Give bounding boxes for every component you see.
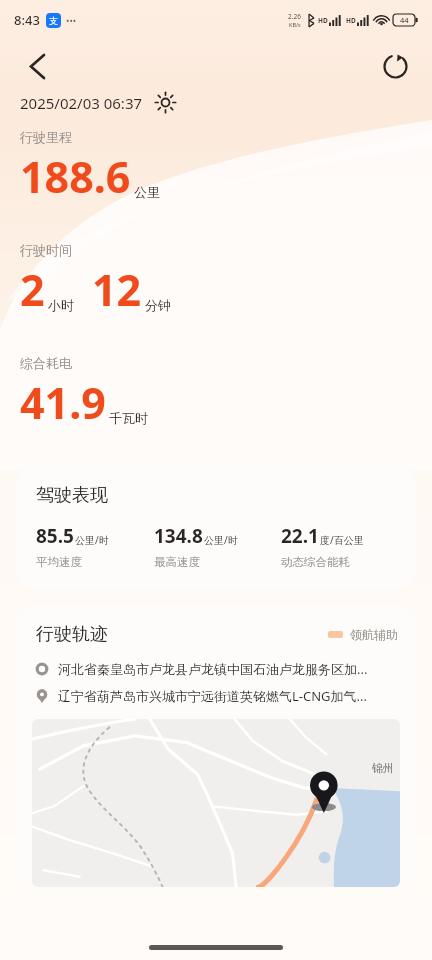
staticText: ••• — [66, 14, 77, 26]
staticText: 辽宁省葫芦岛市兴城市宁远街道英铭燃气L-CNG加气... — [58, 687, 368, 705]
staticText: 行驶轨迹 — [36, 623, 108, 646]
button[interactable]: 行驶轨迹 — [16, 605, 416, 887]
staticText: 44 — [400, 15, 409, 25]
staticText: 动态综合能耗 — [281, 555, 350, 569]
staticText: 小时 — [48, 297, 74, 313]
staticText: 2 — [20, 260, 45, 319]
staticText: 分钟 — [145, 297, 171, 313]
staticText: 12 — [92, 260, 142, 319]
staticText: 22.1 — [281, 523, 319, 549]
button[interactable]: 辽宁省葫芦岛市兴城市宁远街道英铭燃气L-CNG加气... — [34, 687, 400, 705]
staticText: HD — [346, 16, 356, 25]
staticText: 领航辅助 — [350, 627, 398, 642]
staticText: 综合耗电 — [20, 355, 72, 371]
staticText: 平均速度 — [36, 555, 82, 569]
staticText: 134.8 — [154, 523, 203, 549]
staticText: 188.6 — [20, 147, 131, 206]
staticText: 行驶里程 — [20, 129, 72, 145]
staticText: 行驶时间 — [20, 242, 72, 258]
staticText: 2025/02/03 06:37 — [20, 93, 143, 113]
staticText: HD — [318, 16, 328, 25]
staticText: 2.26 — [288, 12, 301, 21]
staticText: 85.5 — [36, 523, 74, 549]
staticText: 千瓦时 — [109, 410, 148, 426]
staticText: 支 — [49, 15, 58, 26]
button[interactable]: Refresh — [374, 45, 416, 87]
button[interactable]: Back — [16, 45, 58, 87]
staticText: KB/s — [289, 21, 301, 28]
staticText: 最高速度 — [154, 555, 200, 569]
staticText: 8:43 — [14, 11, 40, 29]
staticText: 度/百公里 — [320, 533, 364, 547]
staticText: 河北省秦皇岛市卢龙县卢龙镇中国石油卢龙服务区加... — [58, 660, 368, 678]
button[interactable]: 驾驶表现 — [16, 466, 416, 589]
staticText: 41.9 — [20, 373, 106, 432]
staticText: 公里/时 — [204, 533, 238, 547]
staticText: 公里/时 — [75, 533, 109, 547]
staticText: 公里 — [134, 184, 160, 200]
staticText: 驾驶表现 — [36, 484, 108, 507]
staticText: 锦州 — [372, 761, 394, 775]
button[interactable]: 河北省秦皇岛市卢龙县卢龙镇中国石油卢龙服务区加... — [34, 660, 400, 678]
